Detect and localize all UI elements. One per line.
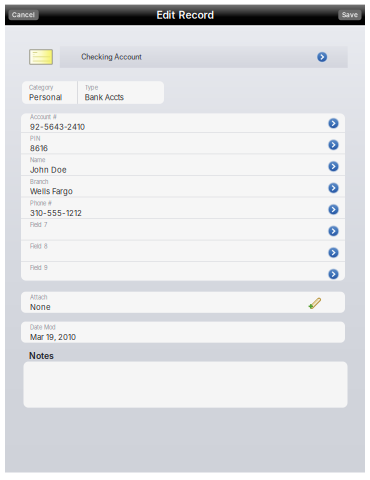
button[interactable]: Field 7 [21, 219, 345, 240]
staticText: Type [85, 84, 98, 91]
staticText: Edit Record [156, 9, 213, 21]
button[interactable]: Details [327, 203, 340, 216]
staticText: Wells Fargo [30, 187, 73, 196]
button[interactable]: Category [22, 81, 77, 104]
staticText: Date Mod [30, 324, 56, 331]
button[interactable]: Save [338, 10, 361, 20]
staticText: Notes [29, 350, 54, 361]
button[interactable]: Account # [21, 111, 345, 132]
staticText: Field 7 [30, 221, 47, 228]
staticText: Field 8 [30, 243, 48, 250]
staticText: 8616 [30, 144, 48, 153]
button[interactable]: Details [327, 246, 340, 259]
staticText: Checking Account [81, 53, 141, 61]
button[interactable]: Cancel [8, 10, 39, 20]
button[interactable]: Details [327, 138, 340, 151]
staticText: Branch [30, 178, 48, 185]
button[interactable]: Branch [21, 176, 345, 197]
staticText: Cancel [12, 11, 35, 19]
staticText: Category [29, 84, 53, 91]
staticText: Save [342, 11, 358, 19]
staticText: Phone # [30, 200, 52, 207]
button[interactable]: Field 8 [21, 240, 345, 261]
staticText: None [30, 302, 51, 312]
button[interactable]: PIN [21, 133, 345, 154]
button[interactable]: Details [327, 117, 340, 130]
staticText: Personal [29, 93, 62, 102]
staticText: Bank Accts [85, 93, 124, 102]
button[interactable]: Date Mod [21, 322, 345, 343]
staticText: Mar 19, 2010 [30, 332, 76, 342]
button[interactable]: Details [316, 50, 329, 63]
button[interactable]: Phone # [21, 197, 345, 218]
button[interactable]: Field 9 [21, 262, 345, 283]
button[interactable]: Checking Account [5, 46, 365, 68]
button[interactable]: Attach [21, 292, 345, 313]
button[interactable]: Details [327, 160, 340, 173]
staticText: 92-5643-2410 [30, 122, 85, 132]
staticText: PIN [30, 135, 40, 142]
button[interactable]: Details [327, 225, 340, 238]
button[interactable]: Details [327, 268, 340, 281]
staticText: John Doe [30, 165, 67, 175]
staticText: Account # [30, 114, 57, 121]
staticText: 310-555-1212 [30, 208, 82, 218]
button[interactable]: Name [21, 154, 345, 175]
staticText: Name [30, 157, 45, 164]
staticText: Field 9 [30, 265, 48, 271]
staticText: Attach [30, 294, 47, 301]
button[interactable]: Type [78, 81, 164, 104]
button[interactable]: Details [327, 181, 340, 194]
